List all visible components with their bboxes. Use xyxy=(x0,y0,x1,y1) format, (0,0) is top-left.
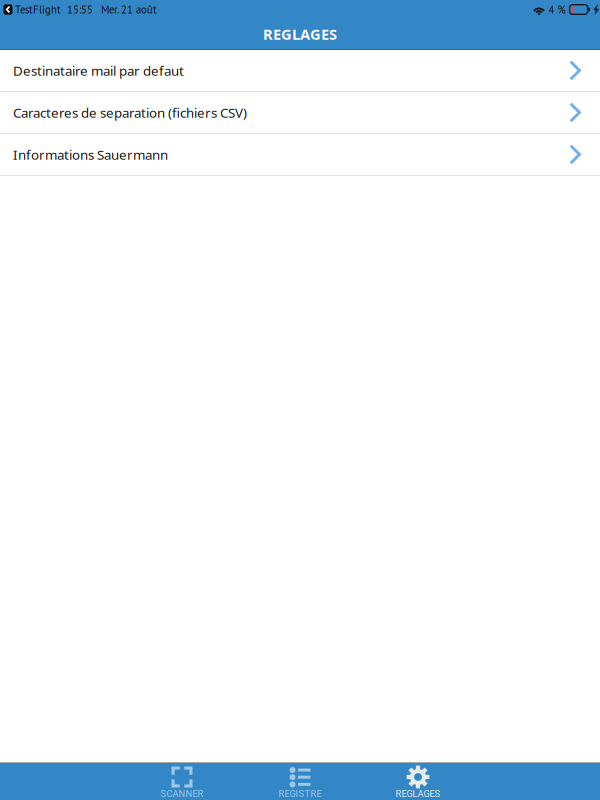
staticText: REGISTRE xyxy=(278,788,321,799)
button[interactable]: SCANNER xyxy=(126,763,238,800)
button[interactable]: Destinataire mail par defaut xyxy=(0,50,600,92)
staticText: Caracteres de separation (fichiers CSV) xyxy=(13,103,247,122)
staticText: 15:55 xyxy=(67,3,93,16)
staticText: TestFlight xyxy=(15,3,61,16)
staticText: 4 % xyxy=(549,3,566,16)
staticText: Informations Sauermann xyxy=(13,145,168,164)
staticText: REGLAGES xyxy=(263,24,337,44)
staticText: Destinataire mail par defaut xyxy=(13,61,184,80)
button[interactable]: Informations Sauermann xyxy=(0,134,600,176)
staticText: Mer. 21 août xyxy=(101,3,157,16)
button[interactable]: REGISTRE xyxy=(244,763,356,800)
button[interactable]: Caracteres de separation (fichiers CSV) xyxy=(0,92,600,134)
button[interactable]: REGLAGES xyxy=(362,763,474,800)
staticText: SCANNER xyxy=(160,788,203,799)
staticText: REGLAGES xyxy=(395,788,440,799)
